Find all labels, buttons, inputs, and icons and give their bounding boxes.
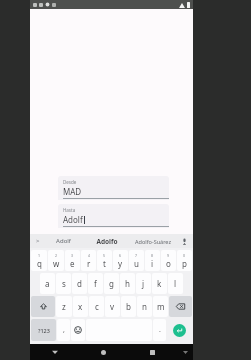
staticText: 4 bbox=[88, 253, 91, 258]
staticText: Desde bbox=[63, 179, 77, 185]
staticText: t bbox=[103, 258, 106, 269]
button[interactable]: d bbox=[72, 273, 87, 294]
button[interactable]: Emoji bbox=[71, 319, 85, 341]
staticText: n bbox=[142, 301, 147, 312]
staticText: w bbox=[53, 258, 60, 269]
button[interactable]: Shift bbox=[31, 296, 55, 317]
staticText: Adolf bbox=[63, 214, 83, 225]
staticText: f bbox=[94, 278, 97, 289]
staticText: 8 bbox=[151, 253, 154, 258]
button[interactable]: k bbox=[152, 273, 167, 294]
button[interactable]: m bbox=[153, 296, 168, 317]
button[interactable]: 7 bbox=[129, 250, 144, 271]
staticText: 0 bbox=[183, 253, 186, 258]
staticText: , bbox=[63, 325, 65, 335]
staticText: 2 bbox=[55, 253, 58, 258]
staticText: 3 bbox=[71, 253, 74, 258]
button[interactable]: , bbox=[57, 319, 70, 341]
staticText: 1 bbox=[38, 253, 41, 258]
button[interactable]: 1 bbox=[31, 250, 47, 271]
button[interactable]: Hasta bbox=[58, 204, 169, 228]
button[interactable]: z bbox=[56, 296, 72, 317]
staticText: c bbox=[95, 301, 99, 312]
button[interactable]: 2 bbox=[48, 250, 64, 271]
button[interactable]: n bbox=[137, 296, 152, 317]
staticText: 5 bbox=[103, 253, 106, 258]
button[interactable]: s bbox=[56, 273, 71, 294]
button[interactable]: b bbox=[121, 296, 136, 317]
staticText: ?123 bbox=[38, 327, 50, 334]
button[interactable]: 0 bbox=[177, 250, 192, 271]
button[interactable]: Voice input bbox=[178, 234, 190, 248]
staticText: x bbox=[78, 301, 83, 312]
button[interactable]: 4 bbox=[81, 250, 96, 271]
button[interactable]: Backspace bbox=[169, 296, 192, 317]
staticText: . bbox=[159, 325, 161, 335]
staticText: g bbox=[109, 278, 114, 289]
button[interactable]: Adolfo bbox=[85, 234, 128, 248]
button[interactable]: Hide keyboard bbox=[177, 344, 193, 360]
staticText: m bbox=[157, 301, 165, 312]
button[interactable]: 9 bbox=[161, 250, 176, 271]
staticText: p bbox=[182, 258, 187, 269]
staticText: Adolf bbox=[56, 237, 71, 245]
staticText: s bbox=[62, 278, 66, 289]
staticText: 7 bbox=[135, 253, 138, 258]
staticText: r bbox=[87, 258, 91, 269]
staticText: Adolfo-Suárez bbox=[135, 238, 171, 245]
staticText: 6 bbox=[119, 253, 122, 258]
staticText: u bbox=[134, 258, 139, 269]
button[interactable]: . bbox=[153, 319, 166, 341]
staticText: h bbox=[125, 278, 130, 289]
button[interactable]: 3 bbox=[65, 250, 80, 271]
staticText: v bbox=[110, 301, 115, 312]
button[interactable]: h bbox=[120, 273, 135, 294]
button[interactable]: Recent apps bbox=[128, 344, 177, 360]
staticText: e bbox=[70, 258, 75, 269]
button[interactable]: a bbox=[40, 273, 55, 294]
button[interactable]: x bbox=[73, 296, 88, 317]
staticText: l bbox=[174, 278, 177, 289]
button[interactable]: 8 bbox=[145, 250, 160, 271]
button[interactable]: Back bbox=[30, 344, 79, 360]
button[interactable]: c bbox=[89, 296, 104, 317]
staticText: Hasta bbox=[63, 207, 76, 213]
staticText: 9 bbox=[167, 253, 170, 258]
button[interactable]: j bbox=[136, 273, 151, 294]
staticText: a bbox=[45, 278, 50, 289]
button[interactable]: g bbox=[104, 273, 119, 294]
button[interactable]: v bbox=[105, 296, 120, 317]
staticText: j bbox=[142, 278, 145, 289]
button[interactable]: ?123 bbox=[31, 319, 56, 341]
staticText: o bbox=[166, 258, 171, 269]
button[interactable]: f bbox=[88, 273, 103, 294]
button[interactable]: 6 bbox=[113, 250, 128, 271]
staticText: k bbox=[157, 278, 162, 289]
staticText: z bbox=[62, 301, 66, 312]
button[interactable]: Desde bbox=[58, 176, 169, 200]
button[interactable]: Adolfo-Suárez bbox=[128, 234, 178, 248]
staticText: b bbox=[126, 301, 131, 312]
button[interactable]: Home bbox=[79, 344, 128, 360]
button[interactable]: Enter bbox=[167, 319, 192, 341]
button[interactable]: Adolf bbox=[42, 234, 85, 248]
staticText: q bbox=[37, 258, 42, 269]
staticText: i bbox=[151, 258, 154, 269]
button[interactable]: 5 bbox=[97, 250, 112, 271]
staticText: y bbox=[118, 258, 123, 269]
staticText: Adolfo bbox=[96, 237, 118, 246]
staticText: MAD bbox=[63, 186, 82, 197]
staticText: d bbox=[77, 278, 82, 289]
button[interactable]: More suggestions bbox=[33, 234, 42, 248]
button[interactable]: l bbox=[168, 273, 183, 294]
staticText: > bbox=[36, 237, 40, 245]
